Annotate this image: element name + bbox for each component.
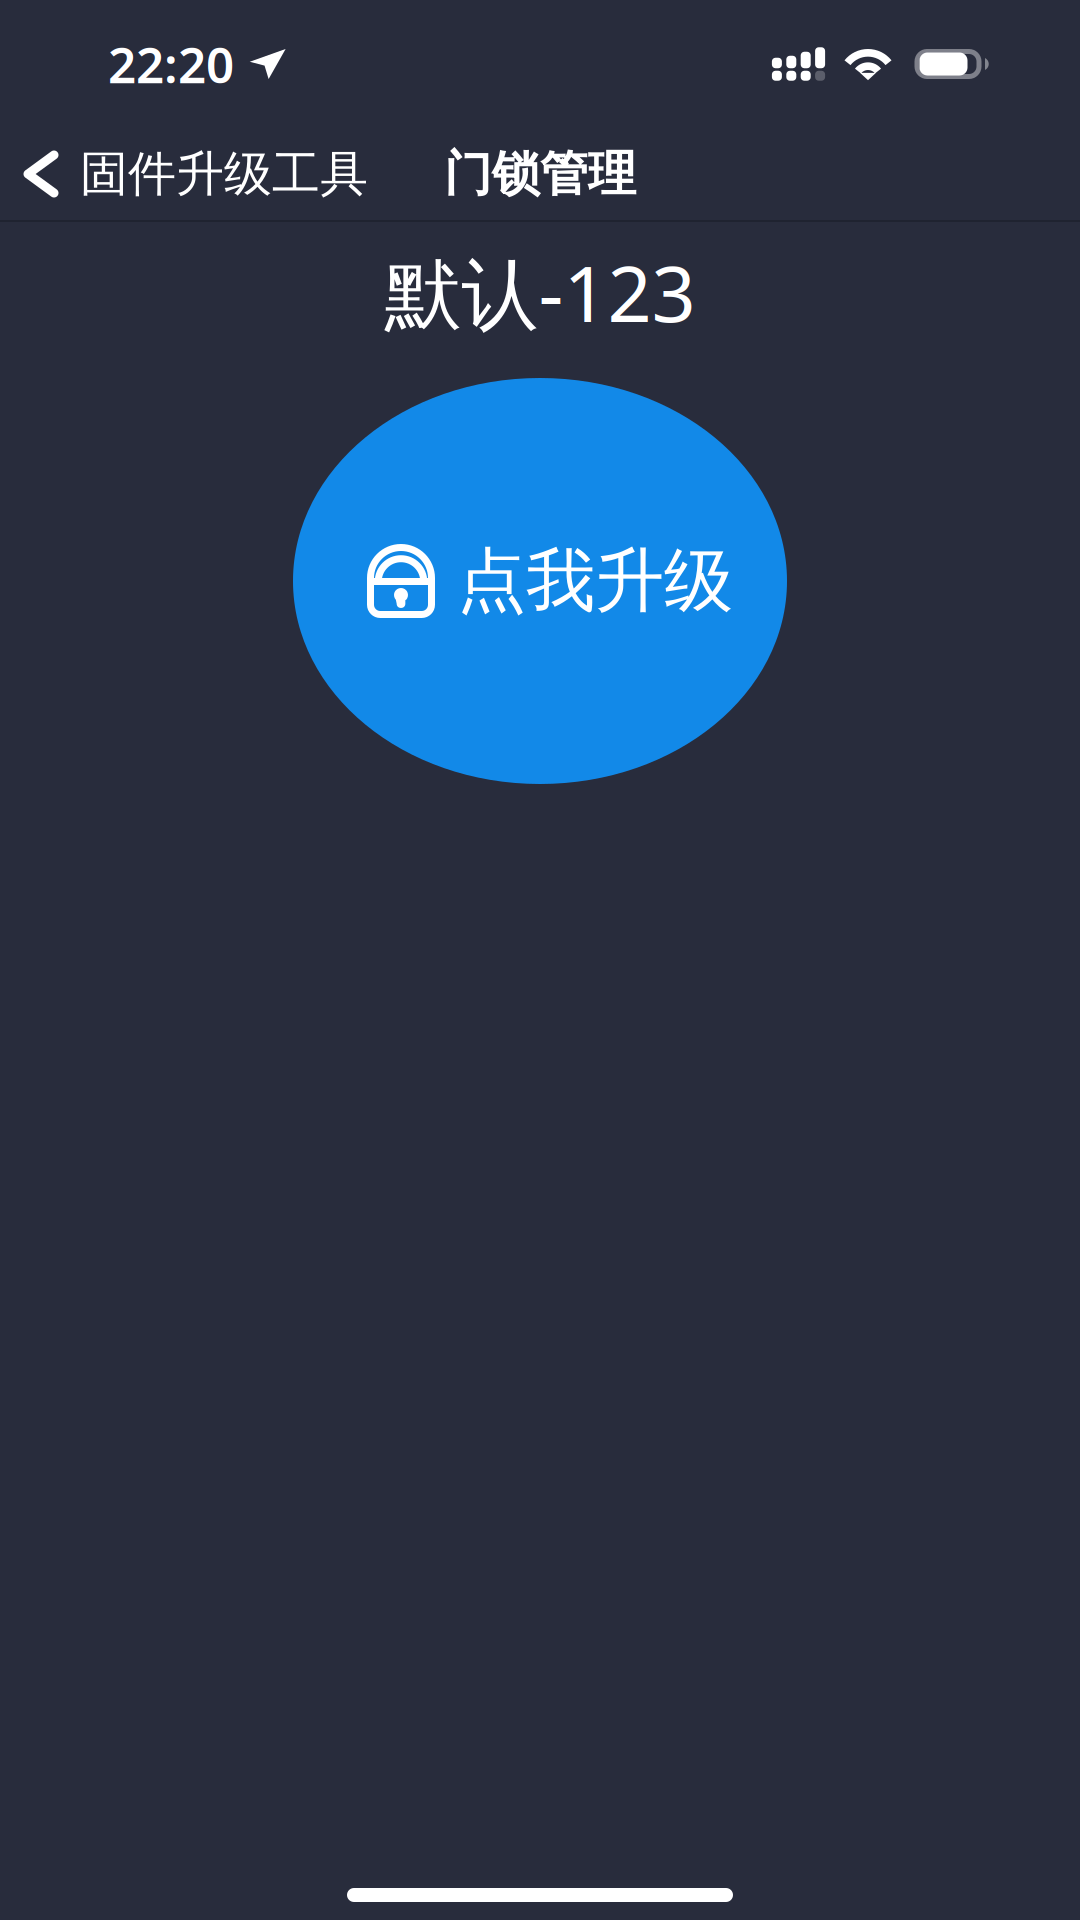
- button[interactable]: 点我升级: [293, 378, 787, 784]
- staticText: 门锁管理: [444, 144, 636, 203]
- staticText: 22:20: [108, 31, 234, 97]
- staticText: 点我升级: [457, 538, 733, 624]
- staticText: 固件升级工具: [80, 144, 368, 203]
- staticText: 默认-123: [384, 241, 695, 343]
- button[interactable]: 固件升级工具: [0, 128, 392, 220]
